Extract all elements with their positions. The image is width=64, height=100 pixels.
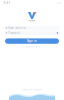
button[interactable]: Sign in [5,38,59,44]
staticText: Password [8,31,20,35]
button[interactable]: Don't have an account? Sign up [21,89,42,90]
staticText: Email address [8,26,25,30]
staticText: Sign in [27,39,37,43]
staticText: ••• ▮ [56,2,60,4]
staticText: Don't have an account? Sign up [21,89,42,90]
staticText: 9:41 [3,1,10,5]
staticText: ACCOUNT [28,20,35,22]
